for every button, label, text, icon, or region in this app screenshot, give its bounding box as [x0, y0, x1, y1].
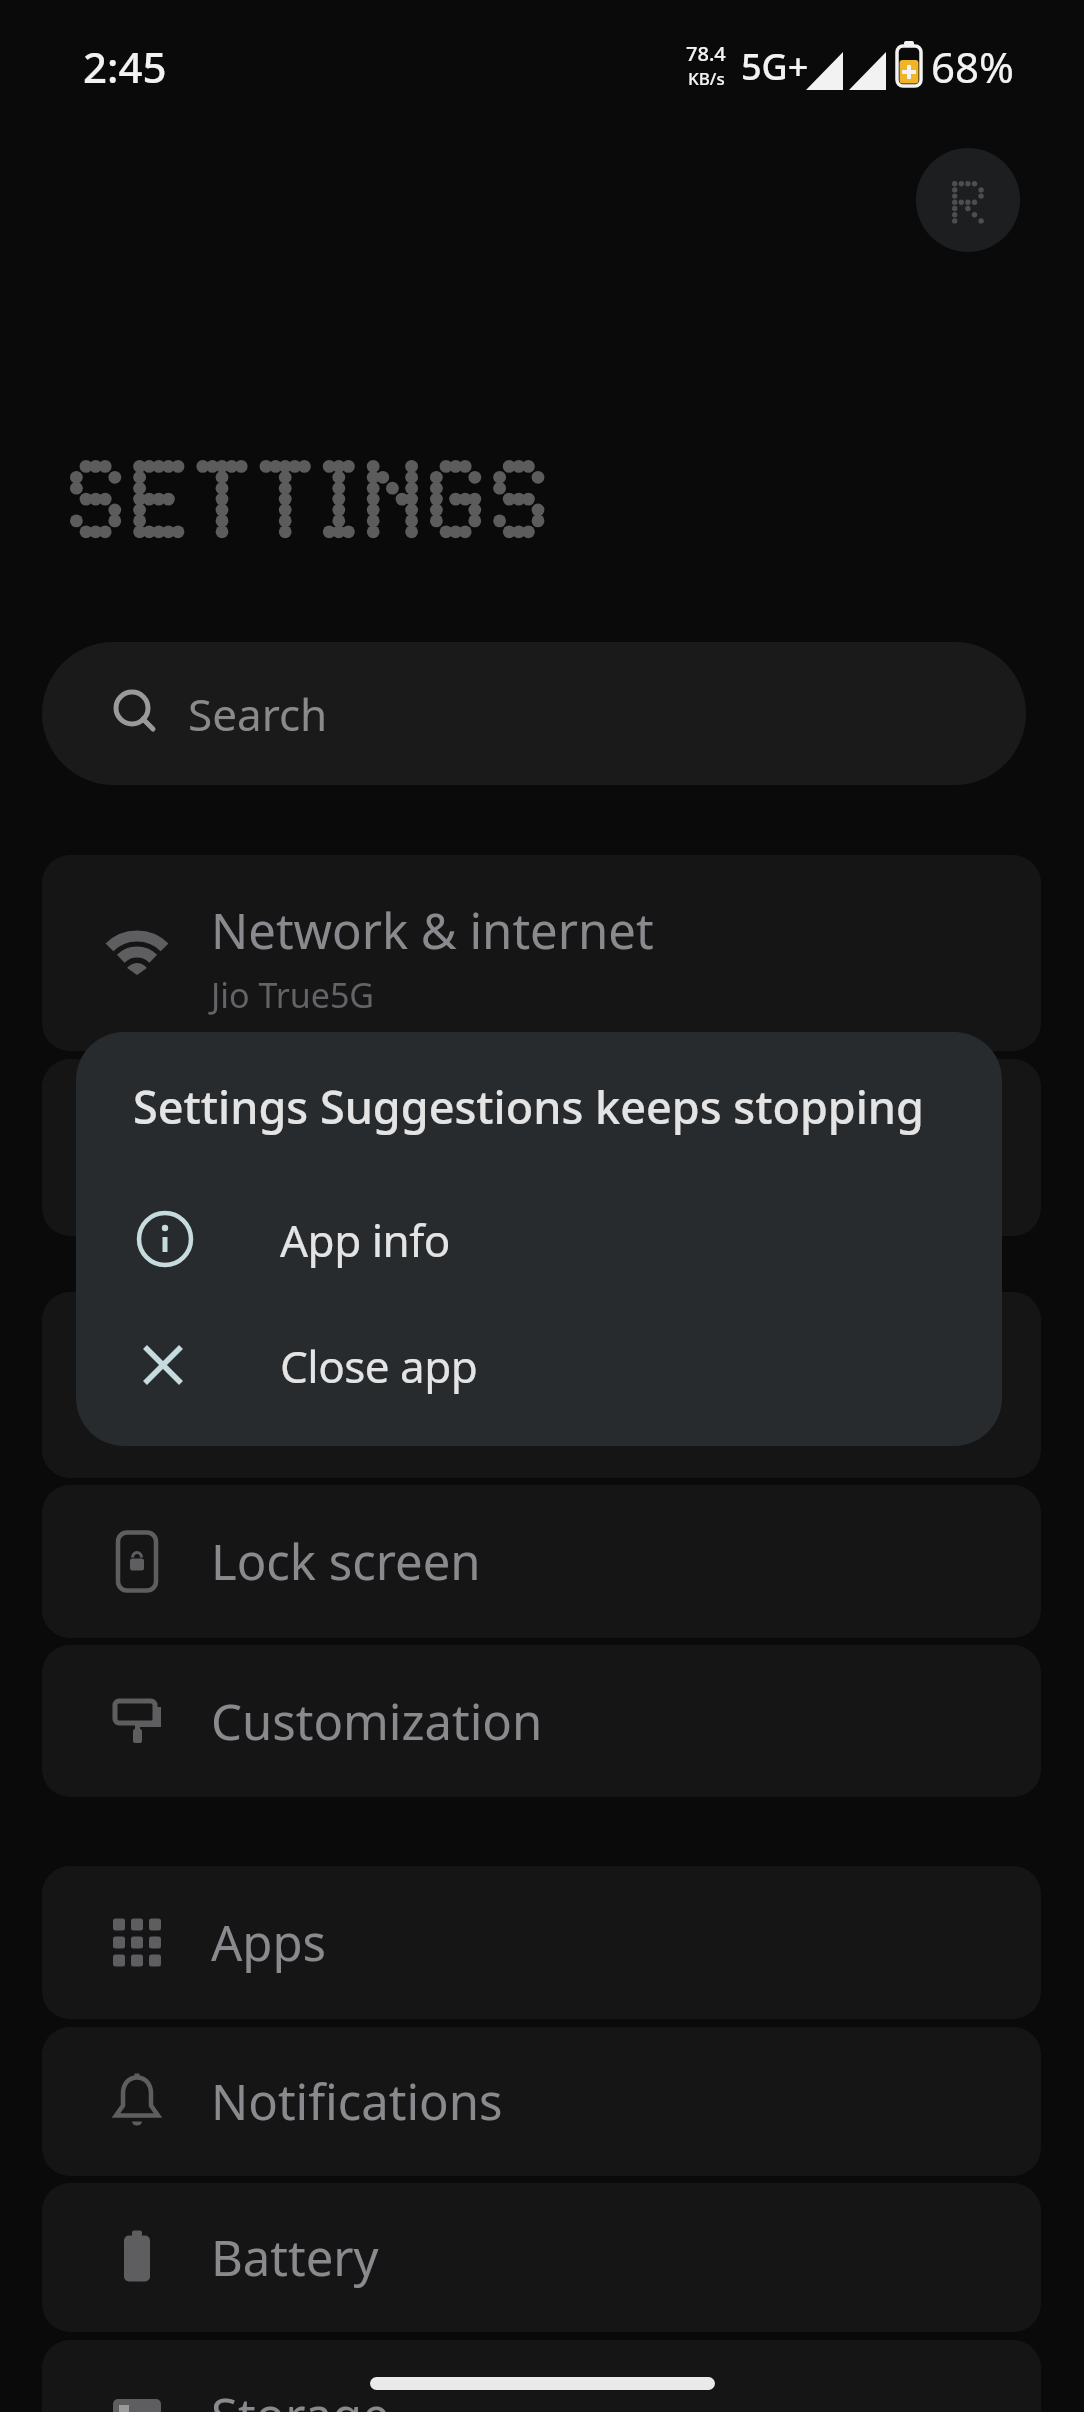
button[interactable]: Lock screen	[42, 1485, 1041, 1638]
staticText: 78.4	[686, 40, 726, 67]
button[interactable]: Close app	[76, 1308, 1002, 1423]
button[interactable]: Search	[42, 642, 1026, 785]
staticText: Apps	[211, 1909, 327, 1976]
staticText: 5G+	[741, 42, 809, 91]
button[interactable]: Notifications	[42, 2027, 1041, 2176]
button[interactable]: Network & internet	[42, 855, 1041, 1051]
staticText: Jio True5G	[211, 972, 375, 1018]
button[interactable]: Customization	[42, 1645, 1041, 1797]
button[interactable]: Battery	[42, 2183, 1041, 2332]
staticText: Settings Suggestions keeps stopping	[133, 1076, 924, 1137]
staticText: 68%	[931, 38, 1014, 95]
button[interactable]	[42, 1059, 1041, 1236]
button[interactable]: Storage	[42, 2340, 1041, 2412]
staticText: Lock screen	[211, 1528, 481, 1595]
button[interactable]: Apps	[42, 1866, 1041, 2019]
staticText: KB/s	[688, 67, 725, 90]
staticText: Battery	[211, 2224, 379, 2291]
button[interactable]	[42, 1292, 1041, 1478]
staticText: Search	[188, 684, 328, 744]
staticText: App info	[280, 1210, 450, 1270]
staticText: Notifications	[211, 2068, 503, 2135]
staticText: Close app	[280, 1336, 478, 1396]
staticText: Storage	[211, 2382, 390, 2412]
staticText: Customization	[211, 1688, 543, 1755]
button[interactable]: App info	[76, 1182, 1002, 1297]
button[interactable]	[916, 148, 1020, 252]
staticText: Network & internet	[211, 897, 654, 964]
staticText: 2:45	[83, 38, 167, 95]
